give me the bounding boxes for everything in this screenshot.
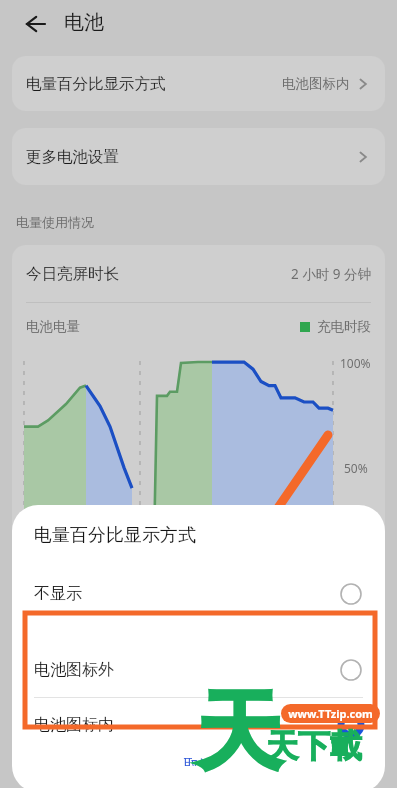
button[interactable]: 不显示	[12, 567, 385, 621]
staticText: 电池	[64, 10, 104, 35]
staticText: 电池图标内	[34, 715, 114, 735]
staticText: 今日亮屏时长	[26, 264, 119, 284]
staticText: 电池电量	[26, 318, 80, 335]
staticText: 电池图标外	[34, 660, 114, 680]
staticText: 更多电池设置	[26, 147, 119, 167]
button[interactable]: 返回	[12, 2, 56, 46]
staticText: www.TTzip.com	[288, 706, 373, 721]
staticText: 充电时段	[317, 318, 371, 335]
staticText: 50%	[344, 460, 368, 476]
staticText: 取消	[183, 756, 215, 766]
button[interactable]: 电池图标内	[12, 698, 385, 752]
staticText: 电量百分比显示方式	[26, 74, 166, 94]
staticText: 电量使用情况	[16, 214, 94, 230]
staticText: 电池图标内	[282, 75, 350, 92]
staticText: 2 小时 9 分钟	[291, 265, 371, 283]
button[interactable]: 电池图标外	[12, 643, 385, 697]
staticText: 不显示	[34, 584, 82, 604]
button[interactable]: 今日亮屏时长	[12, 245, 385, 302]
staticText: 100%	[340, 355, 371, 371]
staticText: 天下載	[266, 726, 362, 766]
staticText: 天	[196, 678, 282, 786]
staticText: 电量百分比显示方式	[34, 524, 196, 547]
button[interactable]: 更多电池设置	[12, 128, 385, 185]
button[interactable]: 电量百分比显示方式	[12, 56, 385, 111]
button[interactable]: 取消	[173, 752, 225, 770]
